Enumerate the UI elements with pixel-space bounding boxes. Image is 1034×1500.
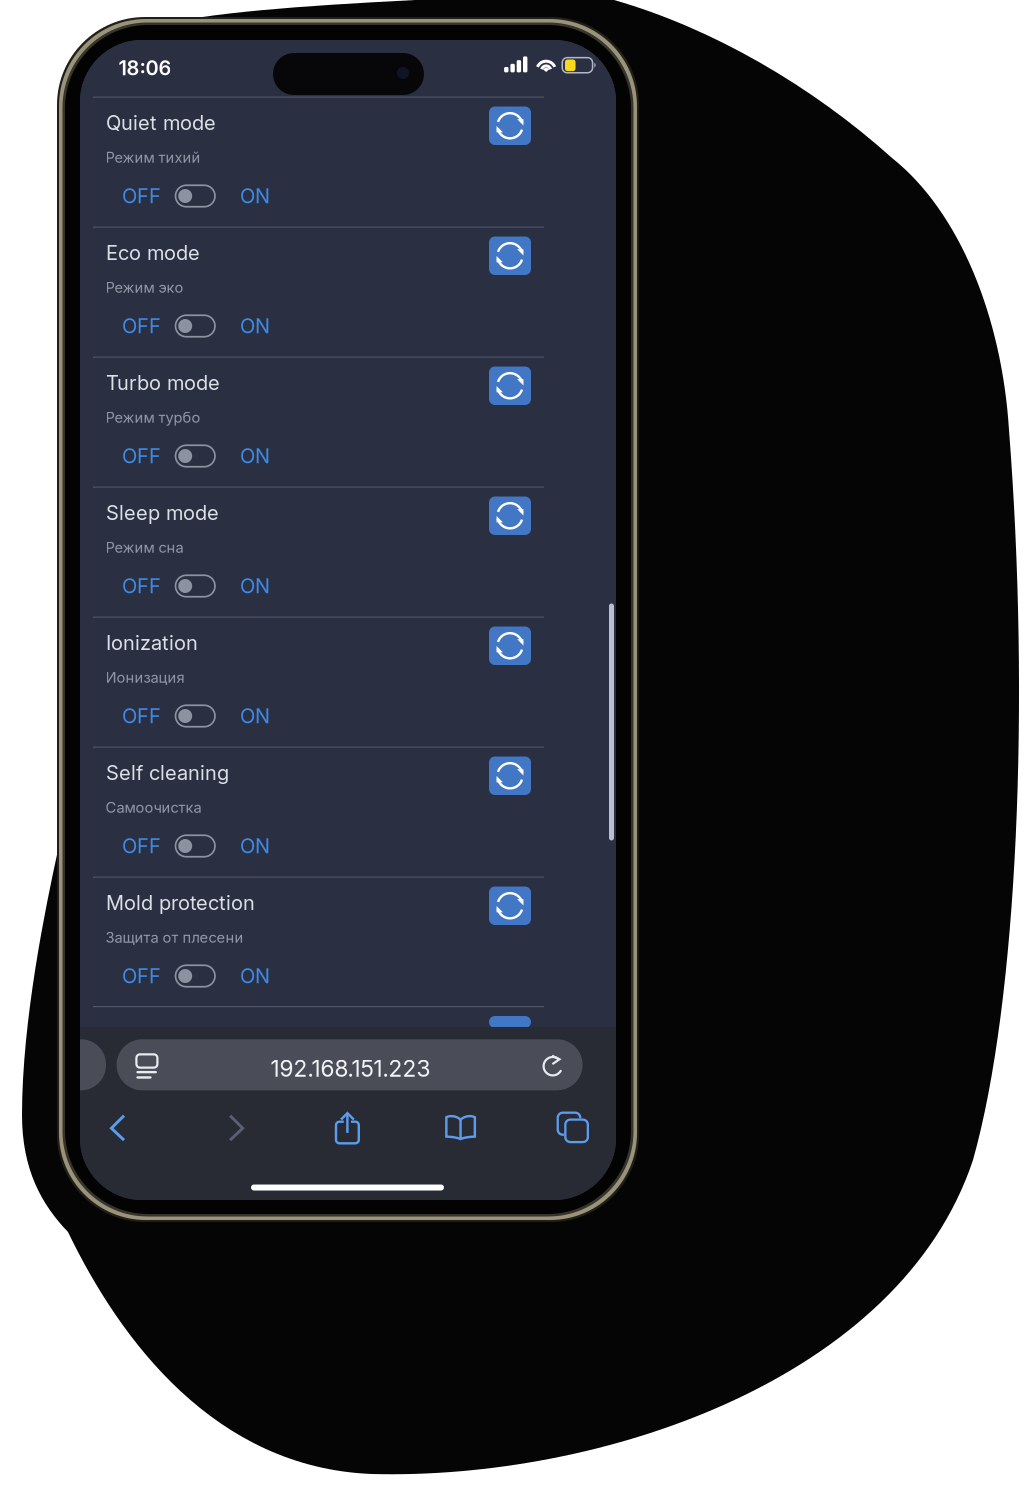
button[interactable]: Toggle — [175, 315, 215, 337]
staticText: Режим тихий — [105, 148, 200, 166]
staticText: Самоочистка — [105, 798, 201, 816]
staticText: Self cleaning — [106, 760, 229, 785]
button[interactable]: Back — [87, 1100, 149, 1156]
staticText: Turbo mode — [106, 370, 220, 395]
staticText: OFF — [122, 834, 161, 858]
staticText: Режим турбо — [105, 408, 200, 426]
staticText: ON — [240, 834, 270, 858]
button[interactable]: Toggle — [175, 185, 215, 207]
staticText: Режим эко — [105, 278, 183, 296]
staticText: OFF — [122, 704, 161, 728]
staticText: OFF — [122, 314, 161, 338]
button[interactable]: Bookmarks — [430, 1100, 492, 1156]
button[interactable]: Toggle — [175, 705, 215, 727]
staticText: OFF — [122, 964, 161, 988]
staticText: Sleep mode — [106, 500, 219, 525]
staticText: OFF — [122, 184, 161, 208]
staticText: ON — [240, 704, 270, 728]
staticText: Режим сна — [105, 538, 183, 556]
button[interactable]: Tabs — [542, 1100, 604, 1156]
staticText: ON — [240, 574, 270, 598]
staticText: OFF — [122, 574, 161, 598]
staticText: Защита от плесени — [105, 928, 243, 946]
button[interactable]: Address: 192.168.151.223 — [117, 1039, 583, 1090]
button[interactable]: Refresh Eco mode — [489, 236, 531, 275]
button[interactable]: Refresh Ionization — [489, 626, 531, 665]
button[interactable]: Toggle — [175, 835, 215, 857]
button[interactable]: Refresh Self cleaning — [489, 756, 531, 795]
button[interactable]: Toggle — [175, 965, 215, 987]
staticText: OFF — [122, 444, 161, 468]
staticText: Ionization — [106, 630, 198, 655]
staticText: ON — [240, 964, 270, 988]
button[interactable]: Toggle — [175, 445, 215, 467]
staticText: Quiet mode — [106, 110, 216, 135]
button[interactable]: Toggle — [175, 575, 215, 597]
button[interactable]: Refresh Quiet mode — [489, 106, 531, 145]
staticText: 192.168.151.223 — [271, 1055, 431, 1082]
button[interactable]: Refresh Mold protection — [489, 886, 531, 925]
staticText: ON — [240, 314, 270, 338]
staticText: ON — [240, 184, 270, 208]
staticText: Ионизация — [105, 668, 184, 686]
button[interactable]: Refresh Sleep mode — [489, 496, 531, 535]
button[interactable]: Share — [316, 1100, 378, 1156]
staticText: Eco mode — [106, 240, 200, 265]
staticText: Mold protection — [106, 890, 255, 915]
button[interactable]: Refresh Turbo mode — [489, 366, 531, 405]
button[interactable]: Forward — [205, 1100, 267, 1156]
staticText: 18:06 — [118, 56, 171, 80]
staticText: ON — [240, 444, 270, 468]
